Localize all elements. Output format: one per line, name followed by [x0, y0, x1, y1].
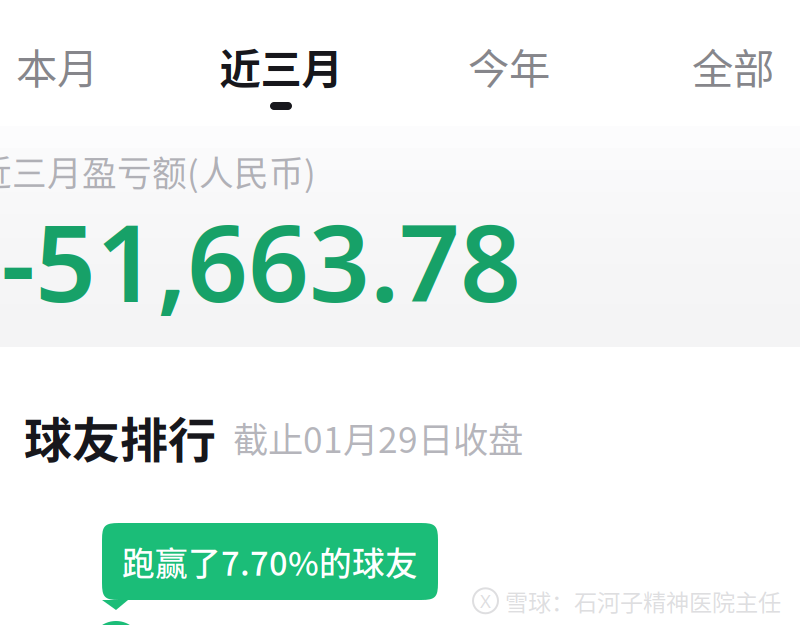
staticText: 跑赢了7.70%的球友: [122, 538, 418, 585]
staticText: X: [480, 588, 491, 613]
staticText: 今年: [468, 36, 550, 96]
staticText: 雪球：石河子精神医院主任: [505, 584, 781, 618]
staticText: 本月: [16, 36, 98, 96]
staticText: 全部: [692, 36, 774, 96]
button[interactable]: 本月: [0, 41, 117, 110]
button[interactable]: 今年: [449, 41, 569, 110]
button[interactable]: 全部: [673, 41, 793, 110]
button[interactable]: 近三月: [201, 41, 361, 110]
staticText: 近三月盈亏额(人民币): [0, 146, 316, 196]
staticText: -51,663.78: [1, 188, 521, 333]
staticText: 近三月: [219, 36, 342, 96]
staticText: 球友排行: [24, 402, 216, 471]
staticText: 截止01月29日收盘: [233, 412, 523, 463]
